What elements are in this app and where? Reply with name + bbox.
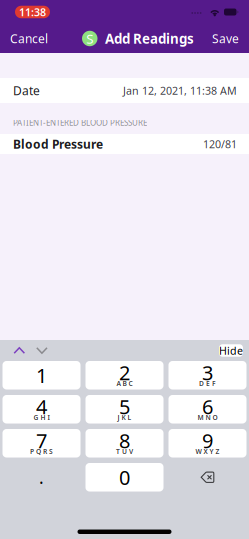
button[interactable]: 3 (168, 361, 246, 389)
staticText: Jan 12, 2021, 11:38 AM (123, 83, 237, 98)
button[interactable]: 7 (2, 429, 80, 457)
staticText: Date (13, 82, 40, 98)
button[interactable]: . (2, 463, 80, 491)
staticText: P Q R S (30, 447, 53, 456)
staticText: 3 (202, 359, 213, 386)
staticText: 1 (36, 362, 47, 389)
staticText: Save (212, 30, 239, 46)
staticText: 11:38 (19, 5, 46, 19)
button[interactable]: Blood Pressure (0, 134, 249, 154)
button[interactable]: 8 (85, 429, 163, 457)
staticText: 9 (202, 427, 213, 454)
staticText: 4 (36, 393, 47, 420)
button[interactable]: 4 (2, 395, 80, 423)
staticText: 120/81 (203, 137, 237, 151)
button[interactable]: 9 (168, 429, 246, 457)
button[interactable]: 1 (2, 361, 80, 389)
staticText: 8 (119, 427, 130, 454)
button[interactable]: Save (206, 25, 249, 51)
staticText: 6 (202, 393, 213, 420)
button[interactable]: 6 (168, 395, 246, 423)
staticText: T U V (116, 447, 133, 456)
staticText: PATIENT-ENTERED BLOOD PRESSURE (13, 117, 147, 128)
button[interactable]: 0 (85, 463, 163, 491)
staticText: Hide (219, 343, 243, 358)
button[interactable]: Next field (31, 342, 58, 359)
button[interactable]: Cancel (0, 25, 54, 51)
staticText: A B C (116, 379, 132, 388)
button[interactable]: Date (0, 78, 249, 103)
staticText: 0 (119, 464, 130, 491)
staticText: G H I (33, 413, 49, 422)
staticText: Blood Pressure (13, 136, 103, 152)
staticText: 2 (119, 359, 130, 386)
staticText: 7 (36, 427, 47, 454)
button[interactable]: 2 (85, 361, 163, 389)
staticText: S (86, 30, 93, 47)
staticText: 5 (119, 393, 130, 420)
staticText: W X Y Z (195, 447, 219, 456)
staticText: Add Readings (105, 30, 194, 47)
button[interactable]: Delete (168, 463, 246, 491)
staticText: J K L (117, 413, 131, 422)
staticText: D E F (199, 379, 216, 388)
button[interactable]: Hide (219, 344, 243, 357)
button[interactable]: Previous field (0, 342, 31, 359)
button[interactable]: 5 (85, 395, 163, 423)
staticText: . (39, 466, 44, 489)
staticText: M N O (197, 413, 217, 422)
staticText: Cancel (10, 30, 48, 46)
